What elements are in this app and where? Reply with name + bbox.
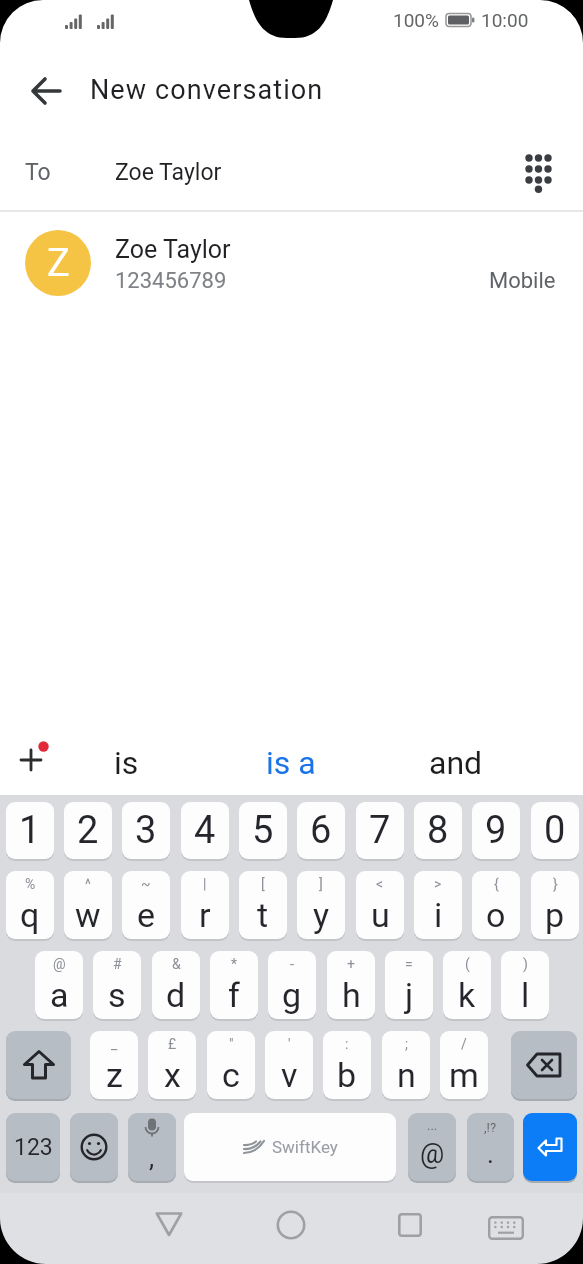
staticText: 123456789 (115, 268, 227, 294)
staticText: # (113, 956, 122, 972)
button[interactable]: 5 (239, 802, 287, 859)
button[interactable]: 2 (64, 802, 112, 859)
button[interactable]: # (93, 951, 141, 1019)
staticText: _ (111, 1036, 118, 1052)
button[interactable]: + (327, 951, 375, 1019)
staticText: 2 (77, 808, 99, 853)
button[interactable]: ,!? (467, 1113, 514, 1181)
staticText: - (290, 956, 294, 972)
staticText: is a (266, 744, 316, 782)
button[interactable] (140, 1195, 198, 1253)
staticText: q (20, 895, 40, 935)
button[interactable]: _ (90, 1031, 138, 1099)
button[interactable]: ; (382, 1031, 430, 1099)
staticText: % (25, 876, 36, 892)
button[interactable] (262, 1196, 320, 1254)
button[interactable]: < (356, 871, 404, 939)
button[interactable]: SwiftKey (184, 1113, 396, 1181)
staticText: x (164, 1055, 181, 1095)
staticText: n (397, 1055, 416, 1095)
staticText: y (313, 895, 330, 935)
staticText: r (199, 895, 211, 935)
staticText: 100% (393, 9, 439, 31)
button[interactable] (523, 1113, 577, 1181)
button[interactable]: 0 (531, 802, 579, 859)
staticText: 6 (310, 808, 332, 853)
staticText: New conversation (90, 74, 324, 106)
staticText: b (337, 1055, 357, 1095)
button[interactable]: ( (443, 951, 491, 1019)
button[interactable]: = (385, 951, 433, 1019)
button[interactable]: ^ (64, 871, 112, 939)
staticText: @ (53, 956, 66, 972)
button[interactable] (24, 69, 68, 113)
button[interactable]: - (268, 951, 316, 1019)
button[interactable]: , (128, 1113, 176, 1181)
button[interactable]: ' (265, 1031, 313, 1099)
staticText: " (229, 1036, 234, 1052)
staticText: u (371, 895, 390, 935)
button[interactable]: 4 (181, 802, 229, 859)
button[interactable]: & (152, 951, 200, 1019)
button[interactable] (70, 1113, 118, 1181)
staticText: 0 (544, 808, 566, 853)
staticText: : (345, 1036, 349, 1052)
button[interactable]: 3 (122, 802, 170, 859)
button[interactable]: > (414, 871, 462, 939)
staticText: Zoe Taylor (115, 235, 231, 264)
button[interactable]: ) (501, 951, 549, 1019)
button[interactable]: ~ (122, 871, 170, 939)
button[interactable] (511, 1031, 577, 1099)
staticText: ^ (85, 876, 91, 892)
staticText: SwiftKey (272, 1137, 338, 1157)
button[interactable]: * (210, 951, 258, 1019)
button[interactable]: [ (239, 871, 287, 939)
staticText: 123 (14, 1134, 53, 1161)
button[interactable] (510, 150, 566, 196)
button[interactable]: | (181, 871, 229, 939)
staticText: = (405, 956, 413, 972)
button[interactable]: ] (297, 871, 345, 939)
staticText: 9 (485, 808, 507, 853)
button[interactable]: } (531, 871, 579, 939)
button[interactable]: @ (35, 951, 83, 1019)
button[interactable]: " (207, 1031, 255, 1099)
button[interactable]: £ (148, 1031, 196, 1099)
staticText: | (203, 876, 207, 892)
button[interactable]: ... (408, 1113, 456, 1181)
staticText: ] (319, 876, 323, 892)
button[interactable] (486, 1203, 526, 1253)
button[interactable] (6, 1031, 71, 1099)
button[interactable] (0, 735, 100, 795)
staticText: @ (420, 1138, 445, 1170)
button[interactable]: 9 (472, 802, 520, 859)
button[interactable]: / (440, 1031, 488, 1099)
staticText: ,!? (484, 1120, 497, 1135)
button[interactable]: 8 (414, 802, 462, 859)
staticText: is (114, 744, 139, 782)
staticText: a (50, 975, 69, 1015)
button[interactable]: 6 (297, 802, 345, 859)
staticText: d (166, 975, 186, 1015)
button[interactable] (0, 212, 583, 314)
staticText: / (461, 1036, 467, 1052)
staticText: 1 (19, 808, 41, 853)
staticText: ( (465, 956, 470, 972)
staticText: Zoe Taylor (115, 159, 222, 186)
button[interactable]: : (323, 1031, 371, 1099)
button[interactable]: 1 (6, 802, 54, 859)
staticText: ~ (141, 876, 151, 892)
button[interactable] (0, 135, 583, 211)
button[interactable] (381, 1196, 439, 1254)
staticText: 5 (252, 808, 274, 853)
staticText: . (487, 1139, 494, 1169)
staticText: o (486, 895, 506, 935)
button[interactable]: % (6, 871, 54, 939)
staticText: ) (523, 956, 528, 972)
staticText: w (75, 895, 101, 935)
button[interactable]: { (472, 871, 520, 939)
button[interactable]: 7 (356, 802, 404, 859)
button[interactable]: 123 (6, 1113, 60, 1181)
staticText: t (257, 895, 269, 935)
staticText: > (434, 876, 442, 892)
